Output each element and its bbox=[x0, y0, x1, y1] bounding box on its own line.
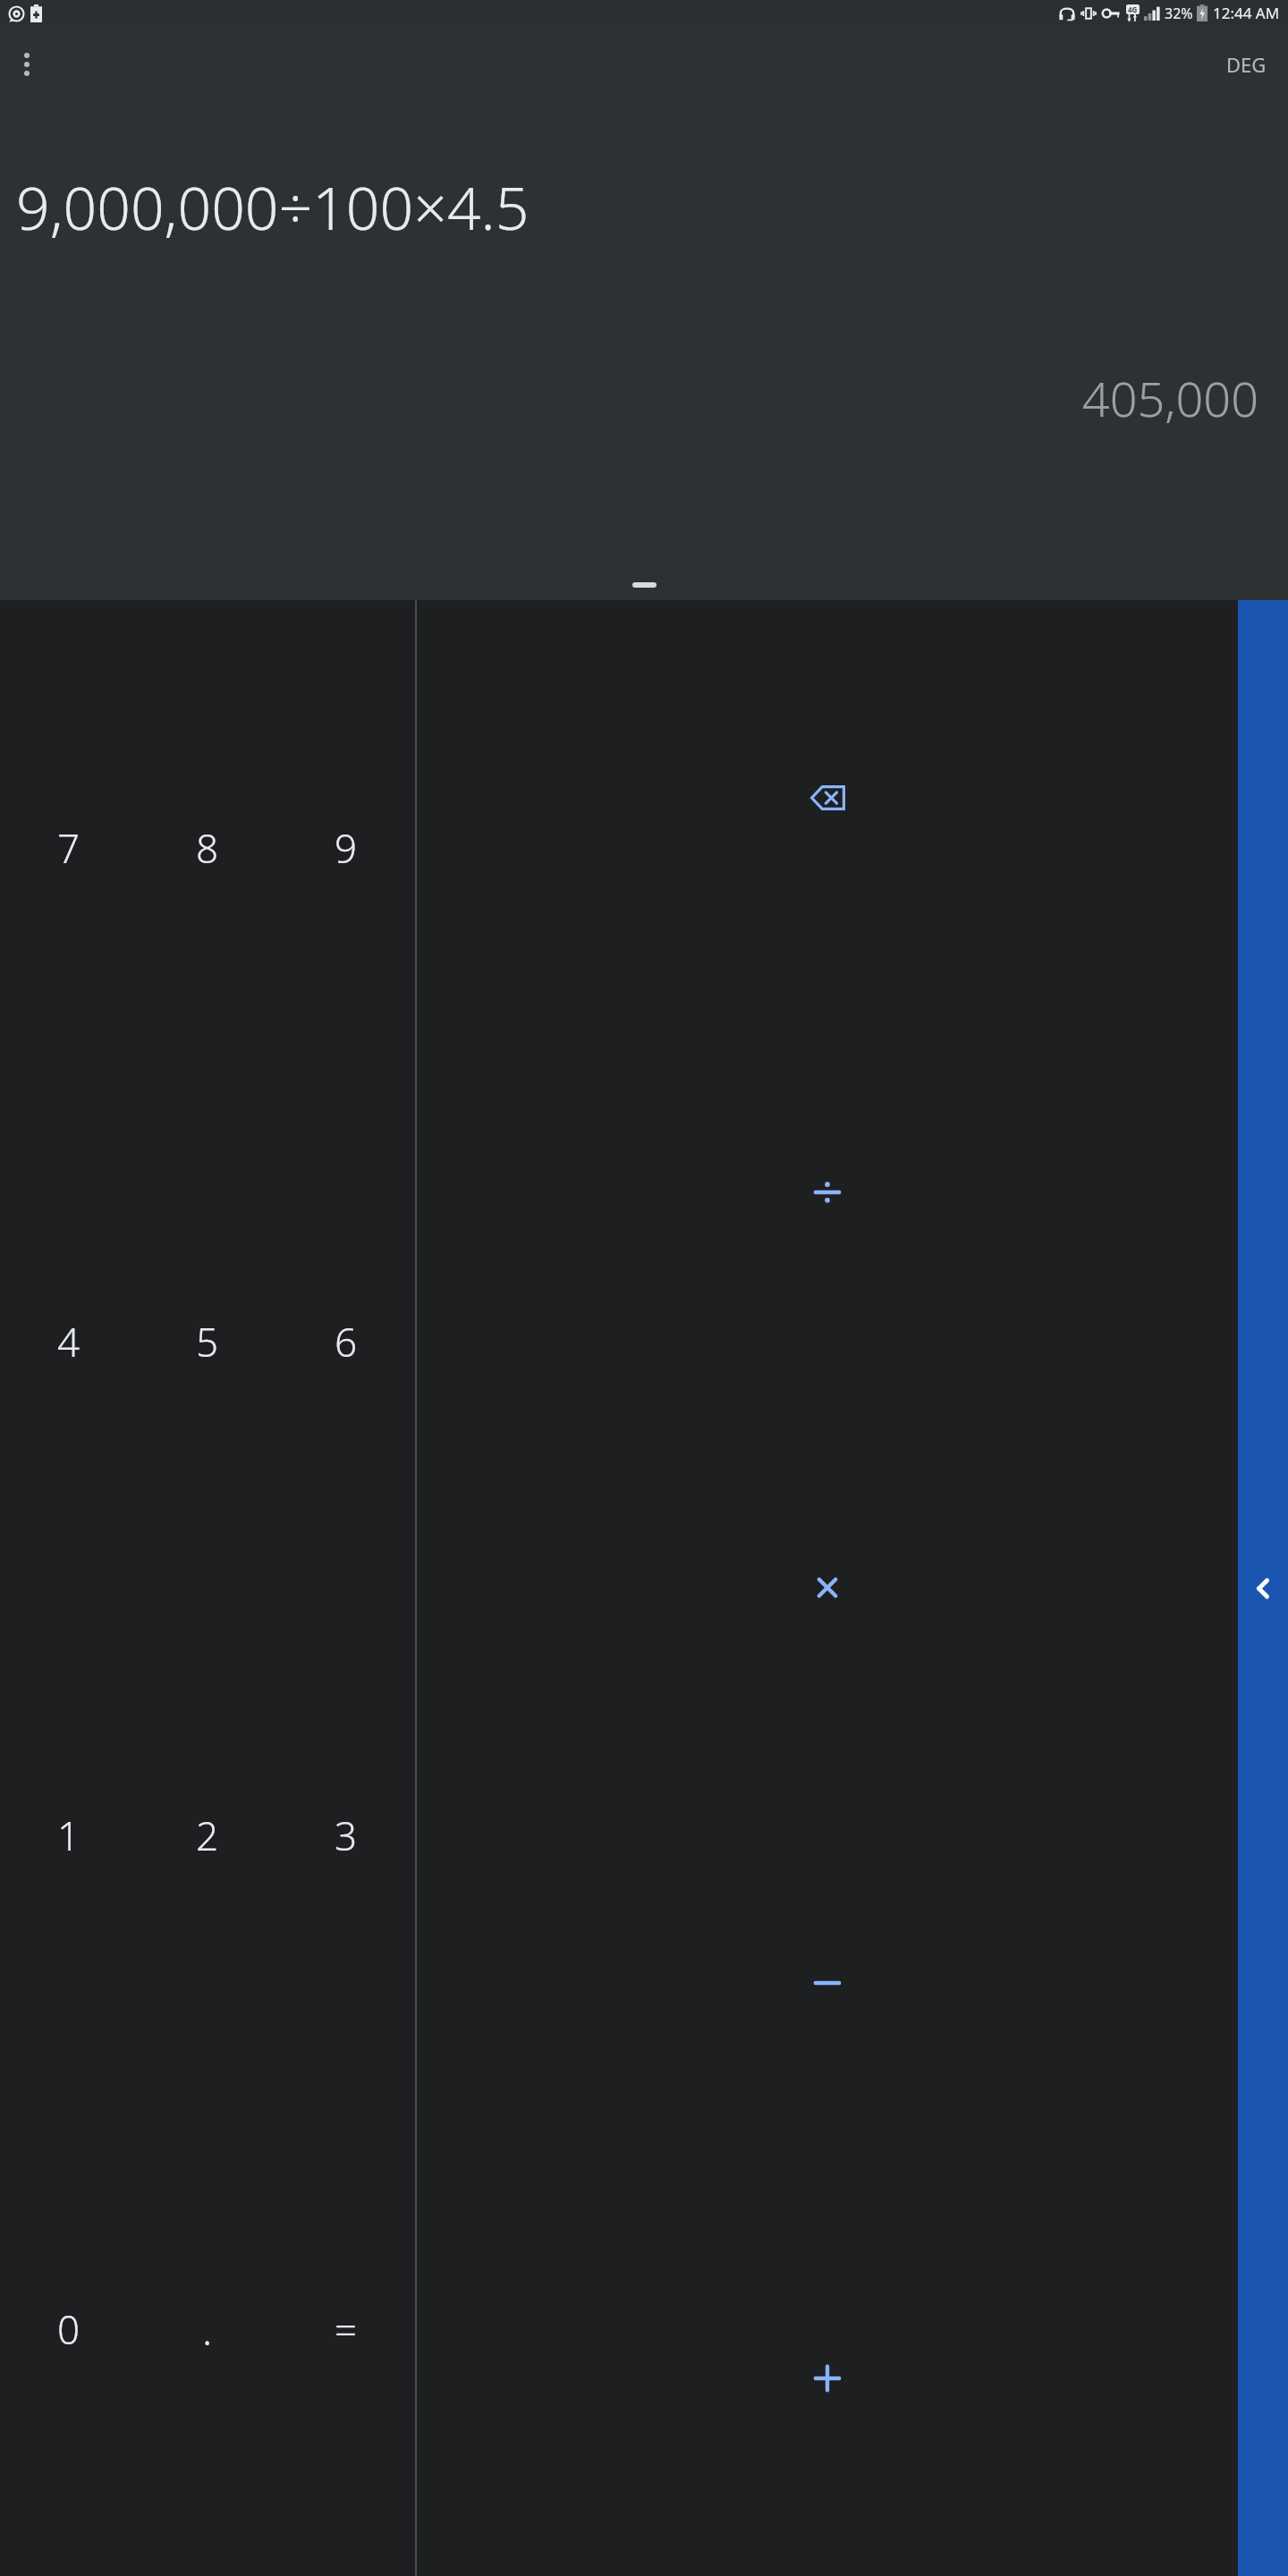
staticText: = bbox=[335, 2302, 358, 2356]
button[interactable]: 3 bbox=[276, 1589, 415, 2082]
staticText: 1 bbox=[57, 1809, 80, 1862]
staticText: 4 bbox=[57, 1315, 80, 1368]
staticText: 2 bbox=[196, 1809, 219, 1862]
button[interactable]: 2 bbox=[138, 1589, 276, 2082]
staticText: 0 bbox=[57, 2302, 80, 2356]
button[interactable]: 6 bbox=[276, 1095, 415, 1589]
button[interactable]: DEG bbox=[1221, 46, 1272, 83]
button[interactable]: = bbox=[276, 2082, 415, 2576]
button[interactable]: 4 bbox=[0, 1095, 138, 1589]
staticText: 5 bbox=[196, 1315, 219, 1368]
staticText: DEG bbox=[1226, 51, 1267, 78]
button[interactable]: Add bbox=[417, 2181, 1238, 2576]
staticText: 7 bbox=[57, 821, 80, 875]
staticText: 12:44 AM bbox=[1213, 3, 1280, 23]
button[interactable]: More options bbox=[5, 43, 48, 86]
staticText: 405,000 bbox=[0, 365, 1258, 431]
button[interactable]: 5 bbox=[138, 1095, 276, 1589]
button[interactable]: 0 bbox=[0, 2082, 138, 2576]
button[interactable]: Backspace bbox=[417, 600, 1238, 995]
button[interactable]: Divide bbox=[417, 995, 1238, 1390]
button[interactable]: 8 bbox=[138, 600, 276, 1095]
staticText: 4G bbox=[1128, 4, 1138, 14]
button[interactable]: Expand pad bbox=[632, 582, 657, 588]
button[interactable]: Show advanced pad bbox=[1238, 600, 1288, 2576]
button[interactable]: Subtract bbox=[417, 1785, 1238, 2181]
staticText: 8 bbox=[196, 821, 219, 875]
staticText: 3 bbox=[335, 1809, 358, 1862]
staticText: . bbox=[202, 2301, 213, 2358]
button[interactable]: Multiply bbox=[417, 1390, 1238, 1785]
button[interactable]: 7 bbox=[0, 600, 138, 1095]
staticText: 32% bbox=[1165, 4, 1193, 23]
button[interactable]: 9 bbox=[276, 600, 415, 1095]
staticText: 9,000,000÷100×4.5 bbox=[16, 166, 1288, 247]
staticText: 6 bbox=[335, 1315, 358, 1368]
staticText: 9 bbox=[335, 821, 358, 875]
button[interactable]: 1 bbox=[0, 1589, 138, 2082]
